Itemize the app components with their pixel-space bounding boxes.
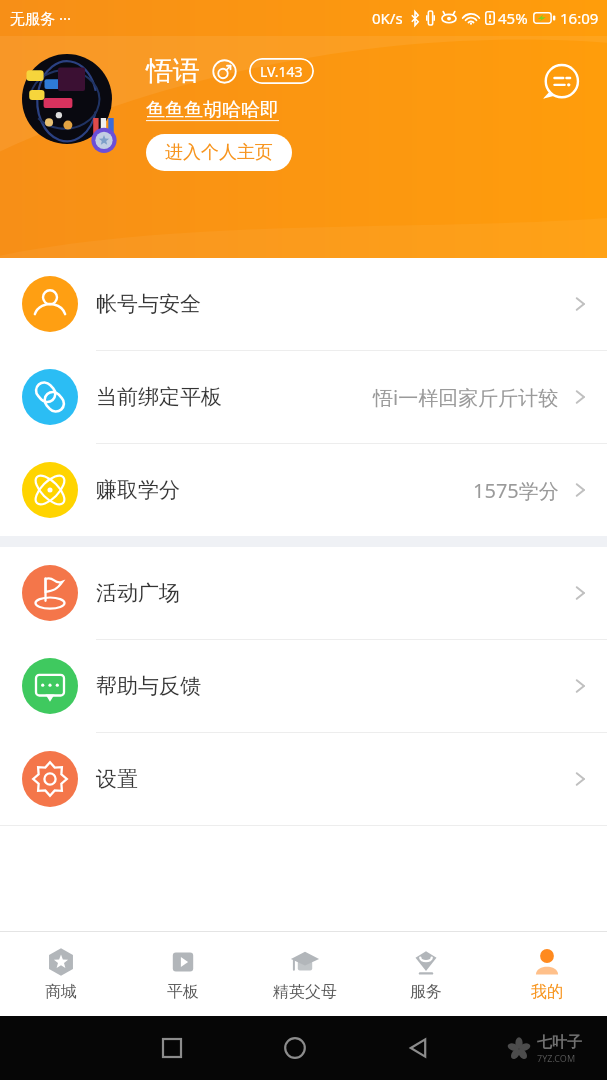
staticText: 商城 bbox=[45, 982, 77, 1002]
button[interactable]: Avatar bbox=[22, 54, 122, 154]
staticText: 赚取学分 bbox=[96, 477, 180, 503]
button[interactable]: Messages bbox=[535, 58, 585, 108]
button[interactable]: 服务 bbox=[365, 932, 486, 1016]
staticText: 16:09 bbox=[560, 8, 599, 28]
button[interactable]: Back bbox=[356, 1016, 479, 1080]
button[interactable]: Home bbox=[233, 1016, 356, 1080]
staticText: 我的 bbox=[531, 982, 563, 1002]
button[interactable]: 当前绑定平板 bbox=[0, 351, 607, 443]
staticText: 设置 bbox=[96, 766, 138, 792]
button[interactable]: 我的 bbox=[486, 932, 607, 1016]
staticText: LV.143 bbox=[260, 62, 303, 81]
staticText: 悟语 bbox=[146, 54, 200, 88]
staticText: 当前绑定平板 bbox=[96, 384, 222, 410]
staticText: 悟i一样回家斤斤计较 bbox=[373, 384, 559, 411]
staticText: 帐号与安全 bbox=[96, 291, 201, 317]
staticText: 45% bbox=[498, 8, 528, 28]
staticText: 1575学分 bbox=[473, 477, 559, 504]
staticText: 0K/s bbox=[372, 8, 403, 28]
staticText: 进入个人主页 bbox=[165, 141, 273, 164]
button[interactable]: 帮助与反馈 bbox=[0, 640, 607, 732]
button[interactable]: 鱼鱼鱼胡哈哈即 bbox=[146, 98, 279, 122]
staticText: 鱼鱼鱼胡哈哈即 bbox=[146, 98, 279, 122]
button[interactable]: 进入个人主页 bbox=[146, 134, 292, 171]
button[interactable]: 商城 bbox=[0, 932, 122, 1016]
button[interactable]: 平板 bbox=[122, 932, 244, 1016]
staticText: 精英父母 bbox=[273, 982, 337, 1002]
staticText: 7YZ.COM bbox=[537, 1052, 576, 1064]
button[interactable]: Recents bbox=[110, 1016, 233, 1080]
staticText: 活动广场 bbox=[96, 580, 180, 606]
button[interactable]: 赚取学分 bbox=[0, 444, 607, 536]
button[interactable]: 设置 bbox=[0, 733, 607, 825]
staticText: 无服务 ··· bbox=[10, 8, 71, 28]
button[interactable]: 活动广场 bbox=[0, 547, 607, 639]
staticText: 七叶子 bbox=[537, 1033, 582, 1052]
staticText: 平板 bbox=[167, 982, 199, 1002]
button[interactable]: 精英父母 bbox=[244, 932, 365, 1016]
staticText: 帮助与反馈 bbox=[96, 673, 201, 699]
staticText: 服务 bbox=[410, 982, 442, 1002]
button[interactable]: 帐号与安全 bbox=[0, 258, 607, 350]
